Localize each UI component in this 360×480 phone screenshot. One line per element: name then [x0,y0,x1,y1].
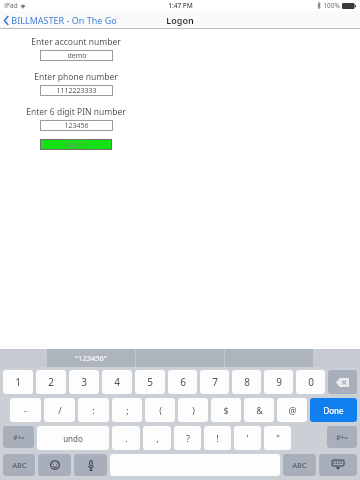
button[interactable]: #+= [3,426,34,448]
staticText: #+= [336,433,348,442]
staticText: / [58,404,62,416]
button[interactable]: ) [178,398,208,422]
button[interactable]: " [264,426,291,450]
staticText: Enter account number [31,36,121,48]
staticText: . [125,432,128,444]
staticText: 0 [308,375,314,389]
staticText: ABC [292,460,307,470]
button[interactable]: $ [211,398,241,422]
button[interactable]: & [244,398,274,422]
staticText: ABC [12,460,27,470]
staticText: BILLMASTER - On The Go [11,14,117,26]
button[interactable]: ( [145,398,175,422]
staticText: 1:47 PM [168,1,193,10]
button[interactable]: ? [174,426,201,450]
button[interactable]: 1112223333 [40,85,113,96]
button[interactable]: - [10,398,41,422]
button[interactable]: BILLMASTER - On The Go [0,12,123,28]
staticText: 1112223333 [56,86,97,96]
button[interactable]: Emoji [38,454,71,476]
staticText: 100% [323,1,340,10]
staticText: 6 [180,375,186,389]
staticText: Done [323,405,344,416]
staticText: ? [186,432,190,444]
button[interactable]: 0 [296,370,325,394]
button[interactable]: @ [277,398,307,422]
button[interactable]: 2 [36,370,66,394]
staticText: Enter phone number [34,71,118,83]
button[interactable]: 3 [69,370,99,394]
button[interactable]: 6 [168,370,197,394]
staticText: undo [63,433,83,444]
button[interactable]: / [44,398,75,422]
staticText: #+= [13,433,25,442]
button[interactable]: 4 [102,370,132,394]
button[interactable]: , [143,426,171,450]
button[interactable]: 8 [232,370,261,394]
button[interactable]: #+= [327,426,357,448]
staticText: ; [126,404,129,416]
staticText: 8 [244,375,250,389]
button[interactable]: Logon [40,139,112,150]
button[interactable]: 1 [3,370,33,394]
button[interactable]: ABC [3,454,35,476]
staticText: , [156,432,159,444]
button[interactable]: undo [37,426,109,450]
button[interactable]: Done [310,398,357,422]
staticText: - [24,404,27,416]
button[interactable]: 7 [200,370,229,394]
staticText: iPad [4,1,18,10]
staticText: Enter 6 digit PIN number [26,106,126,118]
staticText: 123456 [64,121,89,131]
staticText: ! [216,432,219,444]
staticText: & [256,404,263,416]
staticText: Logon [166,14,194,26]
button[interactable]: demo [40,50,113,61]
staticText: " [276,432,280,444]
staticText: $ [223,404,229,416]
button[interactable]: Hide keyboard [319,454,357,476]
staticText: Logon [66,140,87,150]
button[interactable]: : [78,398,109,422]
button[interactable]: 9 [264,370,293,394]
staticText: 1 [15,375,21,389]
button[interactable]: 5 [135,370,165,394]
button[interactable]: Dictation [74,454,107,476]
staticText: demo [67,51,87,61]
button[interactable]: ! [204,426,231,450]
staticText: "123456" [75,353,107,363]
button[interactable]: Backspace [328,370,357,394]
staticText: ' [246,432,249,444]
staticText: : [92,404,95,416]
staticText: 4 [114,375,120,389]
button[interactable]: 123456 [40,120,113,131]
staticText: 2 [48,375,54,389]
staticText: ) [192,404,195,416]
staticText: 5 [147,375,153,389]
staticText: @ [288,404,297,416]
staticText: ( [159,404,162,416]
button[interactable]: ABC [283,454,316,476]
staticText: 7 [212,375,218,389]
staticText: 3 [81,375,87,389]
button[interactable]: ' [234,426,261,450]
button[interactable]: "123456" [47,349,135,367]
staticText: 9 [276,375,282,389]
button[interactable]: . [112,426,140,450]
button[interactable]: ; [112,398,142,422]
